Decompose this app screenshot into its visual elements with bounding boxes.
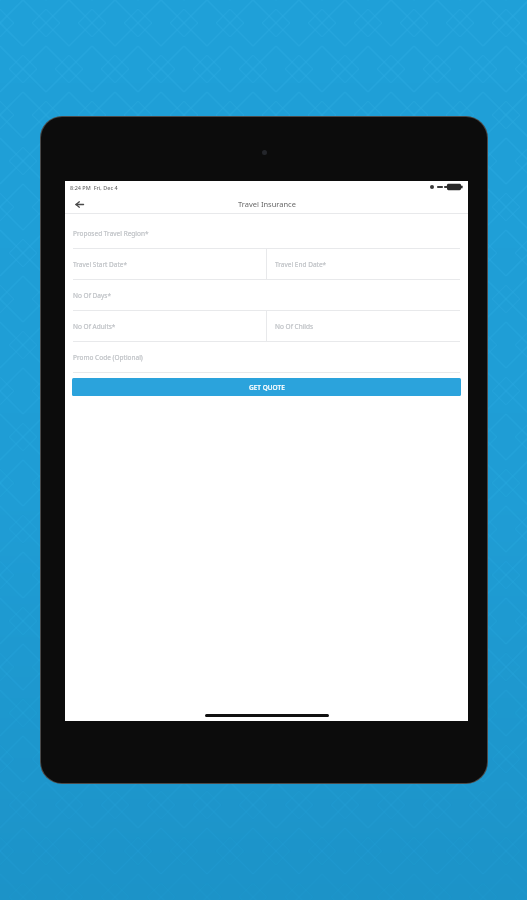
staticText: Travel Start Date* xyxy=(73,260,128,269)
staticText: No Of Childs xyxy=(275,322,314,331)
button[interactable]: Travel Start Date* xyxy=(65,249,266,279)
button[interactable]: No Of Days* xyxy=(65,280,468,311)
staticText: No Of Days* xyxy=(73,291,111,300)
button[interactable]: Travel End Date* xyxy=(267,249,468,279)
button[interactable]: Proposed Travel Region* xyxy=(65,218,468,249)
staticText: Travel End Date* xyxy=(275,260,327,269)
button[interactable]: GET QUOTE xyxy=(72,378,461,396)
button[interactable]: Back xyxy=(71,196,87,212)
staticText: Promo Code (Optional) xyxy=(73,353,143,362)
staticText: 8:24 PM Fri, Dec 4 xyxy=(70,184,118,191)
button[interactable]: No Of Childs xyxy=(267,311,468,341)
staticText: Proposed Travel Region* xyxy=(73,229,149,238)
button[interactable]: Promo Code (Optional) xyxy=(65,342,468,373)
button[interactable]: No Of Adults* xyxy=(65,311,266,341)
staticText: GET QUOTE xyxy=(249,383,285,392)
staticText: No Of Adults* xyxy=(73,322,116,331)
staticText: Travel Insurance xyxy=(238,199,296,209)
